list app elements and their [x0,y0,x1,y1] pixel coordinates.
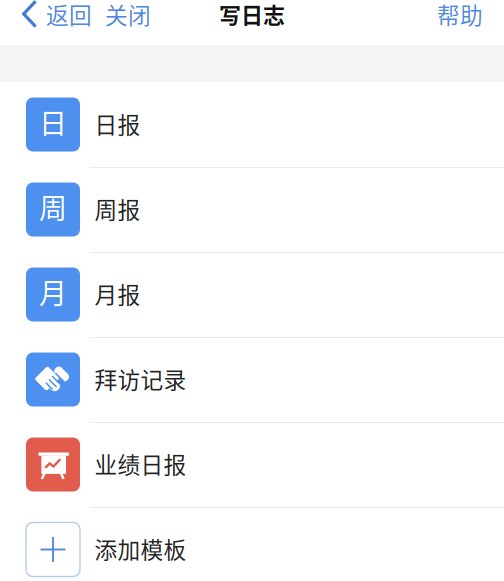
button[interactable]: 周 [0,167,504,252]
button[interactable]: 关闭 [98,0,158,30]
button[interactable]: 拜访记录 [0,337,504,422]
button[interactable]: 业绩日报 [0,422,504,507]
staticText: 帮助 [437,0,483,30]
staticText: 业绩日报 [94,447,186,480]
button[interactable]: 日 [0,82,504,167]
staticText: 周报 [94,192,140,225]
button[interactable]: 添加模板 [0,507,504,581]
staticText: 日 [39,102,67,142]
staticText: 月报 [94,277,140,310]
staticText: 写日志 [219,0,285,30]
staticText: 关闭 [105,0,151,30]
button[interactable]: 返回 [16,0,98,30]
button[interactable]: 帮助 [429,0,491,30]
staticText: 返回 [46,0,92,30]
button[interactable]: 月 [0,252,504,337]
staticText: 月 [39,272,67,312]
staticText: 添加模板 [94,532,186,565]
staticText: 日报 [94,107,140,140]
staticText: 拜访记录 [94,362,186,395]
staticText: 周 [39,187,67,227]
